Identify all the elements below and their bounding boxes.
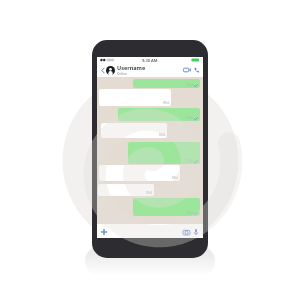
staticText: Online xyxy=(117,72,127,76)
staticText: 09:4 xyxy=(172,176,178,180)
button[interactable]: 09:4 xyxy=(99,165,180,181)
button[interactable]: Camera xyxy=(182,227,191,236)
staticText: Username xyxy=(117,64,146,71)
button[interactable]: Attach xyxy=(99,227,108,236)
button[interactable]: 09:4 xyxy=(118,108,200,121)
button[interactable]: Voice message xyxy=(191,227,200,236)
button[interactable]: 09:4 xyxy=(101,123,167,138)
staticText: 09:4 xyxy=(187,159,193,163)
button[interactable]: Back xyxy=(99,64,106,76)
button[interactable]: Video call xyxy=(182,64,192,76)
button[interactable]: 09:4 xyxy=(99,89,171,106)
staticText: 09:4 xyxy=(146,191,152,195)
button[interactable]: Call xyxy=(192,64,201,76)
staticText: 09:4 xyxy=(187,116,193,120)
button[interactable]: 09:4 xyxy=(133,79,200,88)
button[interactable]: 09:4 xyxy=(98,184,154,196)
staticText: 09:4 xyxy=(187,211,193,215)
button[interactable]: 09:4 xyxy=(128,142,200,164)
staticText: 09:4 xyxy=(187,83,193,87)
button[interactable]: 09:4 xyxy=(133,198,200,216)
staticText: 09:4 xyxy=(163,101,169,105)
staticText: 09:4 xyxy=(159,133,165,137)
staticText: 9:30 AM xyxy=(142,58,158,63)
